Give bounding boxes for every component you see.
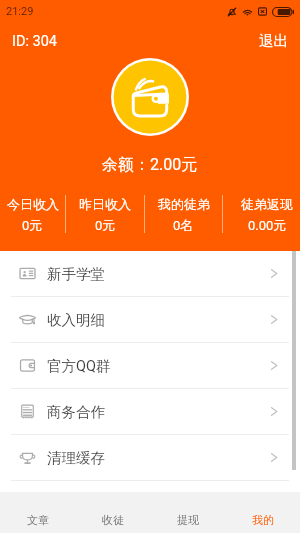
staticText: ID: 304 xyxy=(12,33,58,50)
button[interactable]: ID: 304 xyxy=(0,29,70,54)
button[interactable]: 退出 xyxy=(247,28,300,54)
button[interactable]: 文章 xyxy=(0,492,75,533)
staticText: 徒弟返现 xyxy=(241,196,293,212)
button[interactable]: 提现 xyxy=(150,492,225,533)
staticText: 我的徒弟 xyxy=(158,196,210,212)
button[interactable]: 我的 xyxy=(225,492,300,533)
staticText: 退出 xyxy=(259,32,288,50)
button[interactable]: 徒弟返现 xyxy=(234,192,300,236)
button[interactable]: Wallet balance xyxy=(111,58,189,136)
staticText: 0.00元 xyxy=(248,217,287,233)
staticText: 0元 xyxy=(95,217,116,233)
button[interactable]: 昨日收入 xyxy=(66,192,144,236)
staticText: 余额：2.00元 xyxy=(102,155,198,175)
button[interactable]: 清理缓存 xyxy=(0,435,300,480)
staticText: 我的 xyxy=(252,513,274,527)
staticText: 官方QQ群 xyxy=(47,357,111,375)
button[interactable]: 今日收入 xyxy=(0,192,65,236)
button[interactable]: 官方QQ群 xyxy=(0,343,300,388)
staticText: 昨日收入 xyxy=(79,196,131,212)
staticText: 收入明细 xyxy=(47,311,105,329)
staticText: 文章 xyxy=(27,513,49,527)
staticText: 0名 xyxy=(173,217,194,233)
staticText: 提现 xyxy=(177,513,199,527)
button[interactable]: 我的徒弟 xyxy=(145,192,222,236)
staticText: 商务合作 xyxy=(47,403,105,421)
button[interactable]: 商务合作 xyxy=(0,389,300,434)
staticText: 清理缓存 xyxy=(47,449,105,467)
staticText: 今日收入 xyxy=(7,196,59,212)
staticText: 收徒 xyxy=(102,513,124,527)
button[interactable]: 收徒 xyxy=(75,492,150,533)
button[interactable]: 新手学堂 xyxy=(0,251,300,296)
staticText: 新手学堂 xyxy=(47,265,105,283)
staticText: 21:29 xyxy=(6,5,34,18)
button[interactable]: 收入明细 xyxy=(0,297,300,342)
staticText: 0元 xyxy=(22,217,43,233)
